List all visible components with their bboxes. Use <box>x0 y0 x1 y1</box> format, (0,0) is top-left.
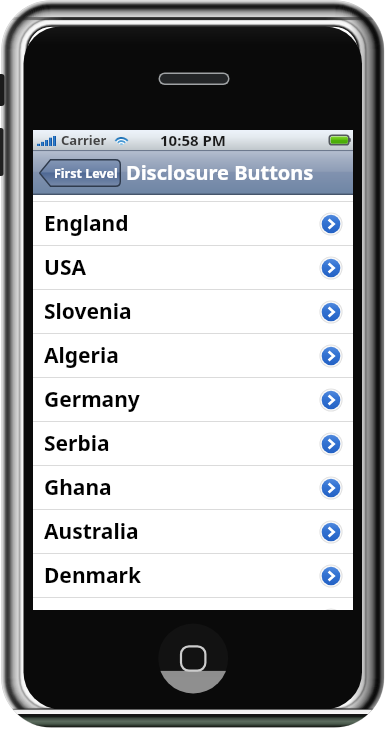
button[interactable]: Ghana <box>33 465 353 509</box>
staticText: Disclosure Buttons <box>126 159 314 186</box>
staticText: First Level <box>54 165 118 182</box>
staticText: Germany <box>44 385 140 414</box>
staticText: Denmark <box>44 561 142 590</box>
staticText: Australia <box>44 517 139 546</box>
staticText: 10:58 PM <box>160 130 226 150</box>
button[interactable]: Spain <box>33 597 353 610</box>
button[interactable]: Germany <box>33 377 353 421</box>
button[interactable]: Show details <box>319 388 343 412</box>
button[interactable]: Slovenia <box>33 289 353 333</box>
button[interactable]: Algeria <box>33 333 353 377</box>
staticText: Ghana <box>44 473 112 502</box>
button[interactable]: Australia <box>33 509 353 553</box>
button[interactable]: Denmark <box>33 553 353 597</box>
button[interactable]: Back to First Level <box>38 159 121 187</box>
staticText: England <box>44 209 129 238</box>
staticText: Algeria <box>44 341 119 370</box>
button[interactable]: Show details <box>319 520 343 544</box>
staticText: Carrier <box>61 131 107 149</box>
button[interactable]: Show details <box>319 432 343 456</box>
button[interactable]: Show details <box>319 212 343 236</box>
button[interactable]: Serbia <box>33 421 353 465</box>
button[interactable]: Show details <box>319 476 343 500</box>
staticText: Slovenia <box>44 297 132 326</box>
button[interactable]: USA <box>33 245 353 289</box>
staticText: Serbia <box>44 429 110 458</box>
button[interactable]: Show details <box>319 344 343 368</box>
staticText: USA <box>44 253 86 282</box>
button[interactable]: Show details <box>319 300 343 324</box>
button[interactable]: Show details <box>319 564 343 588</box>
button[interactable]: Show details <box>319 256 343 280</box>
button[interactable]: England <box>33 201 353 245</box>
button[interactable]: Show details <box>319 608 343 610</box>
